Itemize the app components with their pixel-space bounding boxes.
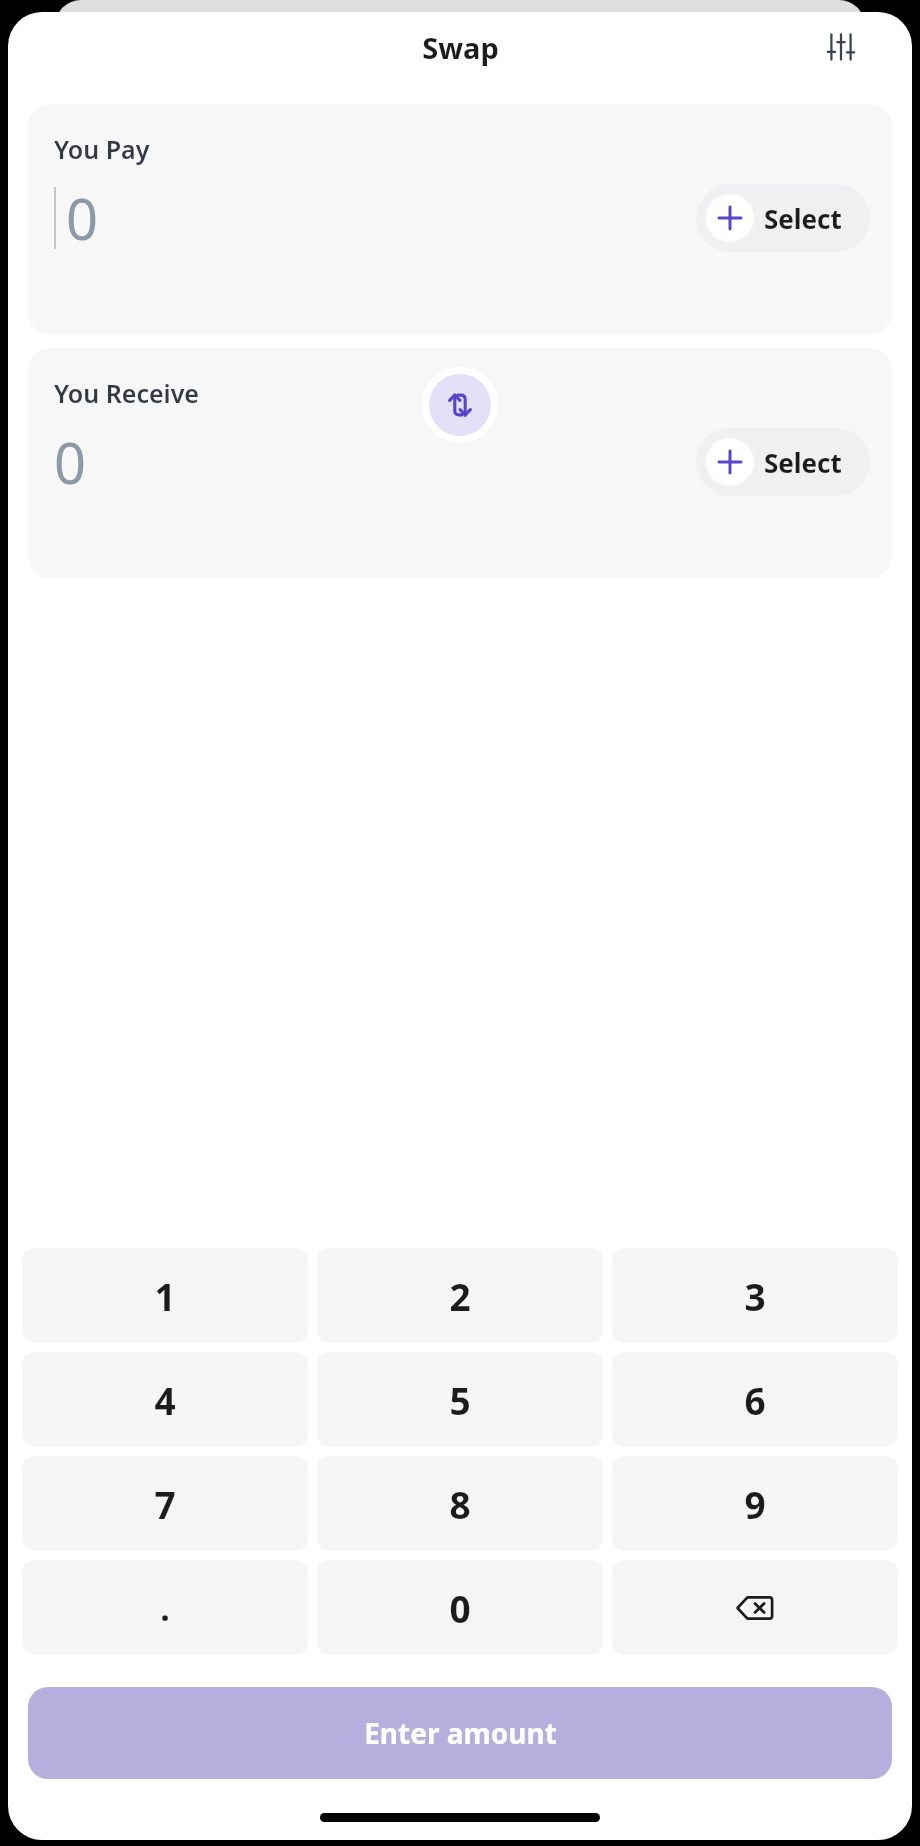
staticText: You Pay	[54, 132, 150, 166]
button[interactable]: 0	[317, 1560, 603, 1655]
staticText: 1	[154, 1271, 176, 1321]
staticText: 8	[449, 1479, 471, 1529]
button[interactable]: 7	[22, 1456, 308, 1551]
staticText: 3	[744, 1271, 766, 1321]
button[interactable]: You Receive	[28, 348, 892, 578]
staticText: .	[160, 1585, 170, 1631]
staticText: 9	[744, 1479, 766, 1529]
button[interactable]: You Pay	[28, 104, 892, 334]
button[interactable]: Select	[696, 428, 870, 496]
staticText: Select	[764, 201, 842, 236]
button[interactable]: 4	[22, 1352, 308, 1447]
staticText: Select	[764, 445, 842, 480]
button[interactable]: Enter amount	[28, 1687, 892, 1779]
button[interactable]: Select	[696, 184, 870, 252]
staticText: 0	[66, 180, 99, 256]
staticText: 7	[154, 1479, 176, 1529]
button[interactable]: 3	[612, 1248, 898, 1343]
button[interactable]: Swap settings	[818, 24, 864, 70]
staticText: Swap	[422, 28, 499, 67]
button[interactable]: .	[22, 1560, 308, 1655]
button[interactable]: 9	[612, 1456, 898, 1551]
button[interactable]: Backspace	[612, 1560, 898, 1655]
button[interactable]: 1	[22, 1248, 308, 1343]
staticText: You Receive	[54, 376, 199, 410]
staticText: Enter amount	[364, 1714, 557, 1752]
staticText: 2	[449, 1271, 471, 1321]
staticText: 5	[449, 1375, 471, 1425]
button[interactable]: 5	[317, 1352, 603, 1447]
button[interactable]: 8	[317, 1456, 603, 1551]
staticText: 4	[154, 1375, 176, 1425]
staticText: 6	[744, 1375, 766, 1425]
staticText: 0	[54, 424, 87, 500]
button[interactable]: 6	[612, 1352, 898, 1447]
staticText: 0	[449, 1583, 471, 1633]
button[interactable]: Switch tokens	[429, 374, 491, 436]
button[interactable]: 2	[317, 1248, 603, 1343]
